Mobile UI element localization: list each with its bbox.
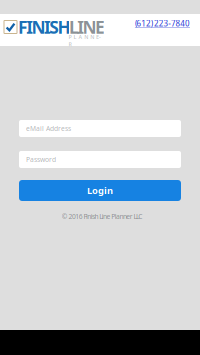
staticText: Password — [26, 155, 56, 164]
staticText: (612) 223-7840 — [135, 18, 190, 29]
staticText: FINISH — [18, 15, 70, 38]
staticText: LINE — [69, 15, 105, 38]
button[interactable]: Login — [19, 180, 181, 201]
staticText: PLANNER — [69, 33, 104, 41]
staticText: Login — [87, 184, 113, 197]
staticText: eMail Address — [26, 124, 71, 133]
button[interactable]: (612) 223-7840 — [135, 16, 200, 31]
staticText: © 2016 Finish Line Planner LLC — [62, 212, 142, 221]
